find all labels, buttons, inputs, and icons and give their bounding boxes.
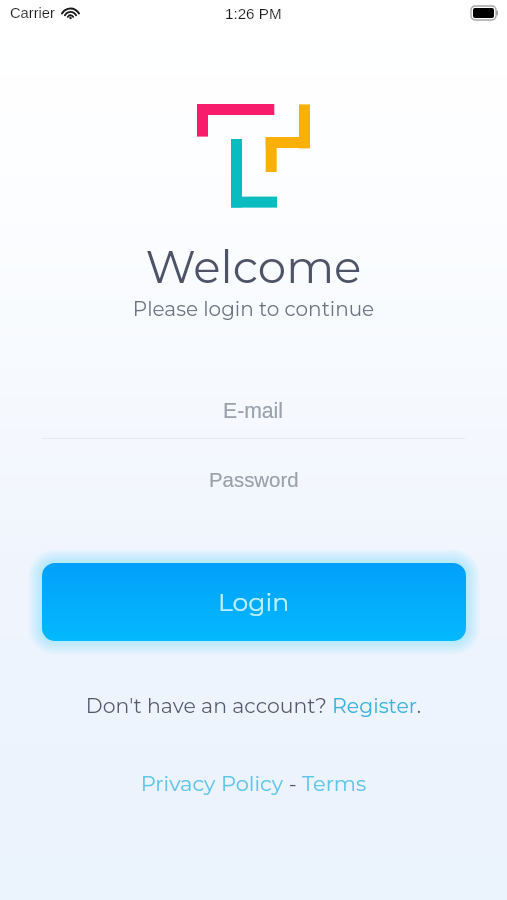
- button[interactable]: Don't have an account? Register.: [0, 690, 507, 718]
- staticText: Welcome: [0, 239, 507, 294]
- staticText: 1:26 PM: [225, 5, 282, 22]
- staticText: Don't have an account? Register.: [0, 693, 507, 718]
- staticText: Carrier: [10, 5, 55, 21]
- button[interactable]: Login: [42, 563, 466, 641]
- staticText: Privacy Policy - Terms: [0, 771, 507, 797]
- staticText: Login: [218, 587, 290, 618]
- staticText: Please login to continue: [0, 297, 507, 321]
- button[interactable]: Privacy Policy - Terms: [0, 765, 507, 797]
- staticText: E-mail: [223, 399, 284, 423]
- staticText: Password: [209, 469, 299, 492]
- button[interactable]: Password: [0, 455, 507, 505]
- button[interactable]: E-mail: [0, 386, 507, 439]
